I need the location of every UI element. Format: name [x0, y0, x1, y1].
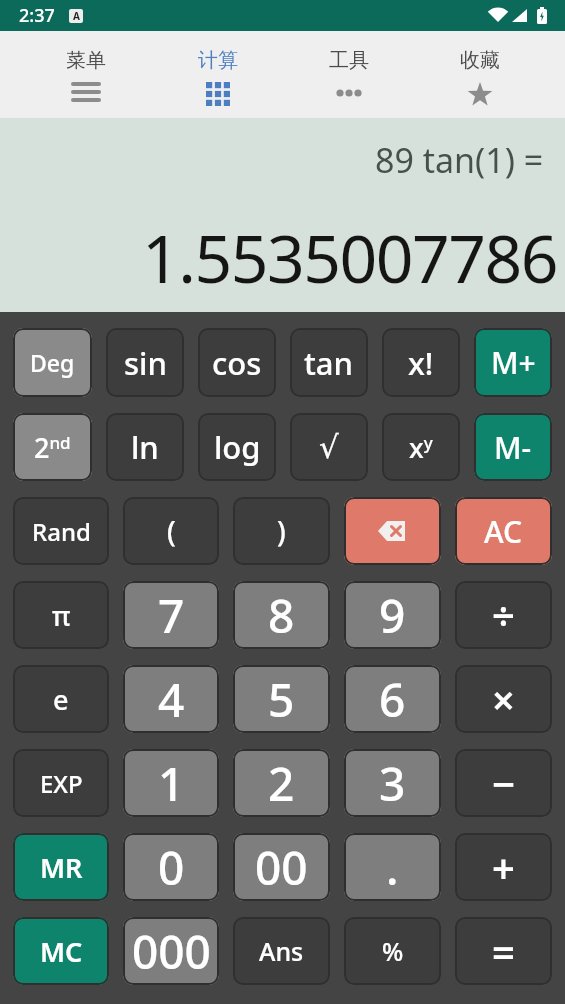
button[interactable]: x!: [382, 328, 460, 397]
staticText: 3: [379, 752, 406, 815]
staticText: (: [167, 512, 176, 550]
button[interactable]: 4: [123, 665, 219, 733]
button[interactable]: MC: [13, 917, 109, 985]
staticText: 计算: [198, 48, 238, 73]
button[interactable]: e: [13, 665, 109, 733]
button[interactable]: 9: [344, 581, 441, 649]
staticText: 7: [158, 584, 185, 647]
staticText: 6: [379, 668, 406, 731]
staticText: +: [492, 840, 515, 894]
staticText: Deg: [30, 347, 75, 378]
button[interactable]: 00: [233, 833, 330, 901]
button[interactable]: 计算: [152, 31, 283, 118]
button[interactable]: π: [13, 581, 109, 649]
staticText: ÷: [492, 588, 515, 642]
staticText: AC: [484, 511, 523, 552]
button[interactable]: 收藏: [414, 31, 545, 118]
staticText: 00: [255, 836, 308, 899]
staticText: 000: [132, 920, 211, 983]
staticText: tan: [304, 342, 354, 384]
button[interactable]: Deg: [13, 328, 92, 397]
button[interactable]: √: [290, 413, 368, 481]
staticText: √: [319, 429, 339, 465]
staticText: M+: [491, 342, 536, 383]
button[interactable]: [344, 497, 441, 565]
staticText: 2:37: [19, 3, 55, 28]
staticText: 0: [158, 836, 185, 899]
button[interactable]: 000: [123, 917, 219, 985]
button[interactable]: 3: [344, 749, 441, 817]
button[interactable]: =: [455, 917, 552, 985]
button[interactable]: log: [198, 413, 276, 481]
staticText: log: [214, 426, 261, 468]
button[interactable]: Rand: [13, 497, 109, 565]
staticText: 2nd: [34, 429, 71, 466]
staticText: MC: [40, 933, 83, 970]
button[interactable]: (: [123, 497, 219, 565]
staticText: A: [73, 9, 80, 23]
button[interactable]: .: [344, 833, 441, 901]
button[interactable]: 1: [123, 749, 219, 817]
staticText: MR: [40, 849, 83, 886]
staticText: ln: [131, 426, 159, 468]
button[interactable]: ): [233, 497, 330, 565]
button[interactable]: xy: [382, 413, 460, 481]
button[interactable]: 8: [233, 581, 330, 649]
staticText: 工具: [329, 48, 369, 73]
staticText: x!: [408, 342, 434, 384]
staticText: %: [382, 934, 404, 968]
staticText: 4: [158, 668, 185, 731]
button[interactable]: AC: [455, 497, 552, 565]
staticText: M-: [494, 427, 532, 468]
button[interactable]: %: [344, 917, 441, 985]
staticText: 2: [268, 752, 295, 815]
staticText: 8: [268, 584, 295, 647]
button[interactable]: 工具: [283, 31, 414, 118]
button[interactable]: ×: [455, 665, 552, 733]
staticText: cos: [212, 342, 262, 384]
button[interactable]: M-: [474, 413, 552, 481]
button[interactable]: +: [455, 833, 552, 901]
button[interactable]: 菜单: [20, 31, 152, 118]
staticText: 1: [158, 752, 185, 815]
staticText: 菜单: [66, 48, 106, 73]
staticText: =: [492, 924, 515, 978]
staticText: sin: [124, 342, 167, 384]
button[interactable]: sin: [106, 328, 184, 397]
button[interactable]: 7: [123, 581, 219, 649]
button[interactable]: ÷: [455, 581, 552, 649]
button[interactable]: MR: [13, 833, 109, 901]
staticText: 89 tan(1) =: [375, 137, 544, 183]
button[interactable]: tan: [290, 328, 368, 397]
staticText: π: [52, 597, 71, 634]
button[interactable]: 0: [123, 833, 219, 901]
button[interactable]: 6: [344, 665, 441, 733]
staticText: 收藏: [460, 48, 500, 73]
button[interactable]: EXP: [13, 749, 109, 817]
staticText: Rand: [32, 515, 91, 548]
button[interactable]: 2nd: [13, 413, 92, 481]
button[interactable]: 2: [233, 749, 330, 817]
staticText: 1.5535007786: [142, 212, 557, 302]
button[interactable]: Ans: [233, 917, 330, 985]
staticText: ): [277, 512, 286, 550]
staticText: −: [492, 756, 516, 810]
staticText: 5: [268, 668, 295, 731]
button[interactable]: ln: [106, 413, 184, 481]
staticText: xy: [409, 429, 433, 466]
button[interactable]: M+: [474, 328, 552, 397]
staticText: 9: [379, 584, 406, 647]
button[interactable]: 5: [233, 665, 330, 733]
staticText: e: [53, 681, 69, 718]
button[interactable]: −: [455, 749, 552, 817]
staticText: EXP: [40, 767, 83, 800]
staticText: .: [386, 836, 399, 899]
staticText: ×: [492, 672, 515, 726]
staticText: Ans: [259, 934, 304, 968]
button[interactable]: cos: [198, 328, 276, 397]
